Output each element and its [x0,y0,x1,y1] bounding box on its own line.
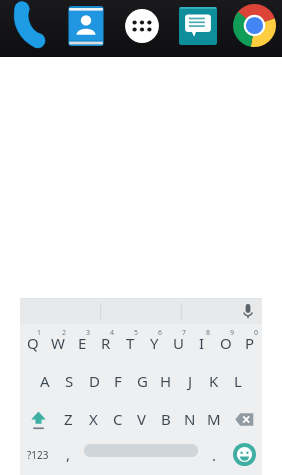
staticText: F [114,371,122,391]
staticText: 7 [182,328,187,338]
staticText: 0 [254,328,259,338]
button[interactable]: P [238,324,262,362]
staticText: . [212,445,217,465]
staticText: Q [27,333,39,353]
staticText: Z [64,409,73,429]
staticText: 5 [134,328,139,338]
button[interactable] [170,0,226,57]
staticText: S [65,371,74,391]
staticText: 8 [206,328,211,338]
staticText: D [89,371,100,391]
staticText: U [173,333,184,353]
button[interactable]: G [130,362,154,400]
button[interactable]: V [130,400,154,438]
button[interactable] [0,0,57,57]
staticText: A [40,371,50,391]
staticText: E [78,333,87,353]
button[interactable]: K [202,362,226,400]
staticText: 1 [37,328,42,338]
staticText: L [234,371,242,391]
staticText: V [137,409,147,429]
button[interactable] [114,0,170,57]
staticText: 3 [86,328,91,338]
staticText: H [160,371,172,391]
button[interactable]: ?123 [20,438,56,475]
button[interactable]: H [154,362,178,400]
staticText: ?123 [27,448,49,462]
button[interactable]: A [32,362,57,400]
button[interactable]: M [202,400,226,438]
button[interactable] [226,0,282,57]
button[interactable]: . [202,438,226,475]
staticText: Y [150,333,159,353]
button[interactable]: L [226,362,250,400]
button[interactable] [181,298,262,324]
staticText: G [137,371,148,391]
staticText: R [101,333,111,353]
button[interactable]: T [118,324,142,362]
staticText: N [184,409,196,429]
button[interactable]: J [178,362,202,400]
button[interactable] [226,438,262,475]
staticText: M [207,409,221,429]
staticText: 9 [230,328,235,338]
button[interactable]: , [56,438,80,475]
button[interactable]: Z [56,400,81,438]
button[interactable] [57,0,114,57]
button[interactable]: B [154,400,178,438]
staticText: 2 [62,328,67,338]
staticText: 4 [110,328,115,338]
staticText: B [161,409,171,429]
button[interactable]: R [94,324,118,362]
button[interactable]: S [57,362,82,400]
button[interactable]: C [106,400,130,438]
staticText: K [209,371,219,391]
button[interactable]: W [45,324,70,362]
button[interactable]: I [190,324,214,362]
button[interactable] [20,400,56,438]
staticText: 6 [158,328,163,338]
button[interactable]: X [81,400,106,438]
button[interactable]: Q [20,324,45,362]
staticText: T [126,333,135,353]
staticText: P [245,333,255,353]
staticText: O [220,333,232,353]
button[interactable]: Y [142,324,166,362]
staticText: X [89,409,98,429]
staticText: C [113,409,123,429]
button[interactable]: D [82,362,106,400]
button[interactable]: O [214,324,238,362]
button[interactable]: E [70,324,94,362]
button[interactable] [80,438,202,475]
button[interactable]: U [166,324,190,362]
button[interactable]: F [106,362,130,400]
button[interactable] [226,400,262,438]
staticText: W [51,333,65,353]
button[interactable]: N [178,400,202,438]
staticText: I [199,333,205,353]
staticText: J [188,371,193,391]
staticText: , [66,444,71,464]
